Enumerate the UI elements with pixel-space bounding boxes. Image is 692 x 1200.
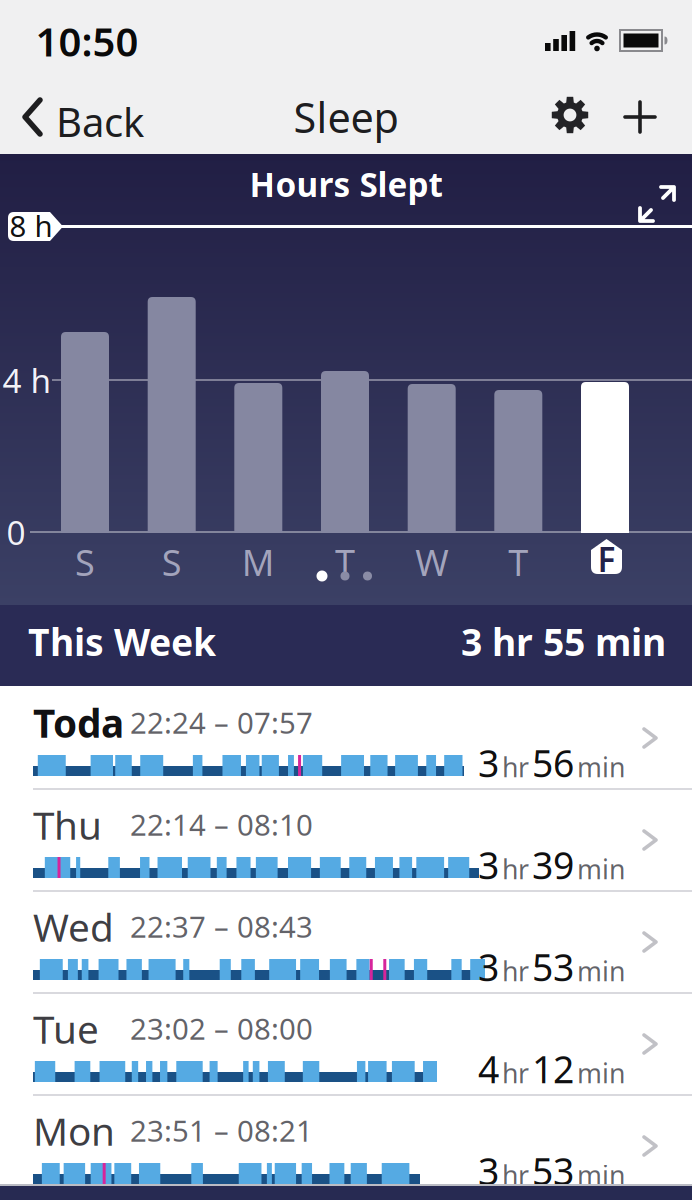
staticText: min bbox=[577, 749, 625, 785]
staticText: hr bbox=[502, 749, 529, 785]
staticText: 10:50 bbox=[35, 14, 138, 67]
staticText: 3 bbox=[478, 840, 499, 890]
staticText: min bbox=[577, 1055, 625, 1091]
staticText: hr bbox=[502, 851, 529, 887]
staticText: min bbox=[577, 851, 625, 887]
staticText: 12 bbox=[532, 1044, 574, 1094]
staticText: 56 bbox=[532, 738, 574, 788]
staticText: Hours Slept bbox=[249, 162, 442, 206]
staticText: hr bbox=[502, 1055, 529, 1091]
staticText: min bbox=[577, 1157, 625, 1193]
staticText: 23:51 – 08:21 bbox=[130, 1111, 313, 1150]
staticText: 0 bbox=[6, 510, 25, 554]
staticText: T bbox=[335, 538, 355, 586]
staticText: hr bbox=[502, 1157, 529, 1193]
staticText: Back bbox=[56, 95, 144, 148]
staticText: 53 bbox=[532, 1146, 574, 1196]
staticText: M bbox=[242, 538, 275, 586]
button[interactable]: Back bbox=[0, 84, 140, 150]
button[interactable]: Toda bbox=[0, 688, 692, 790]
staticText: 53 bbox=[532, 942, 574, 992]
staticText: Tue bbox=[33, 1003, 99, 1054]
button[interactable]: Expand chart bbox=[638, 185, 676, 223]
button[interactable]: Tue bbox=[0, 994, 692, 1096]
staticText: Sleep bbox=[293, 90, 398, 144]
staticText: S bbox=[162, 538, 182, 586]
staticText: Wed bbox=[33, 901, 114, 952]
button[interactable]: Thu bbox=[0, 790, 692, 892]
staticText: 23:02 – 08:00 bbox=[130, 1009, 313, 1048]
staticText: Mon bbox=[33, 1105, 115, 1156]
staticText: hr bbox=[502, 953, 529, 989]
staticText: min bbox=[577, 953, 625, 989]
staticText: 3 bbox=[478, 942, 499, 992]
staticText: 8 h bbox=[9, 206, 52, 245]
staticText: 22:24 – 07:57 bbox=[130, 703, 313, 742]
staticText: 39 bbox=[532, 840, 574, 890]
staticText: W bbox=[415, 538, 448, 586]
button[interactable]: Wed bbox=[0, 892, 692, 994]
staticText: Thu bbox=[33, 799, 102, 850]
staticText: T bbox=[508, 538, 528, 586]
staticText: 22:14 – 08:10 bbox=[130, 805, 313, 844]
staticText: 22:37 – 08:43 bbox=[130, 907, 313, 946]
button[interactable]: Add bbox=[618, 95, 662, 139]
staticText: S bbox=[75, 538, 95, 586]
button[interactable]: Mon bbox=[0, 1096, 692, 1198]
staticText: 4 h bbox=[2, 358, 51, 402]
button[interactable]: Settings bbox=[546, 92, 594, 140]
staticText: Toda bbox=[33, 697, 124, 748]
staticText: F bbox=[597, 537, 615, 581]
staticText: 3 hr 55 min bbox=[461, 617, 666, 666]
staticText: This Week bbox=[28, 617, 216, 666]
staticText: 4 bbox=[478, 1044, 499, 1094]
staticText: 3 bbox=[478, 1146, 499, 1196]
staticText: 3 bbox=[478, 738, 499, 788]
